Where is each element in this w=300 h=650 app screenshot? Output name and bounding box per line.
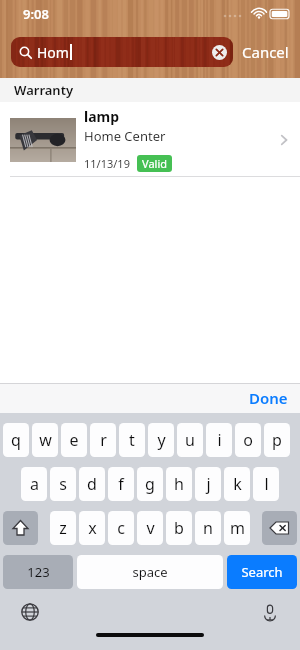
- staticText: e: [69, 429, 79, 451]
- staticText: s: [59, 473, 67, 495]
- staticText: j: [206, 473, 211, 495]
- staticText: y: [157, 429, 166, 451]
- button[interactable]: k: [224, 467, 250, 501]
- button[interactable]: l: [253, 467, 279, 501]
- staticText: lamp: [84, 107, 120, 126]
- button[interactable]: s: [50, 467, 76, 501]
- staticText: o: [243, 429, 253, 451]
- button[interactable]: d: [79, 467, 105, 501]
- button[interactable]: Search: [227, 555, 297, 589]
- button[interactable]: j: [195, 467, 221, 501]
- staticText: Search: [241, 563, 283, 581]
- staticText: w: [39, 429, 52, 451]
- button[interactable]: f: [108, 467, 134, 501]
- staticText: Hom: [37, 43, 69, 62]
- staticText: m: [230, 517, 245, 539]
- button[interactable]: Delete: [262, 511, 297, 545]
- staticText: a: [30, 473, 39, 495]
- button[interactable]: y: [148, 423, 174, 457]
- button[interactable]: o: [235, 423, 261, 457]
- staticText: n: [203, 517, 213, 539]
- staticText: t: [129, 429, 135, 451]
- staticText: p: [272, 429, 282, 451]
- staticText: d: [87, 473, 97, 495]
- staticText: Cancel: [242, 42, 289, 62]
- button[interactable]: g: [137, 467, 163, 501]
- button[interactable]: q: [3, 423, 29, 457]
- staticText: Valid: [142, 156, 167, 171]
- button[interactable]: 123: [3, 555, 73, 589]
- staticText: u: [185, 429, 195, 451]
- button[interactable]: r: [90, 423, 116, 457]
- staticText: 123: [27, 563, 50, 581]
- staticText: q: [11, 429, 21, 451]
- button[interactable]: e: [61, 423, 87, 457]
- button[interactable]: Shift: [3, 511, 38, 545]
- button[interactable]: b: [166, 511, 192, 545]
- staticText: l: [264, 473, 269, 495]
- button[interactable]: p: [264, 423, 290, 457]
- staticText: b: [174, 517, 184, 539]
- button[interactable]: space: [77, 555, 223, 589]
- button[interactable]: c: [108, 511, 134, 545]
- staticText: Warranty: [14, 81, 74, 99]
- button[interactable]: h: [166, 467, 192, 501]
- button[interactable]: lamp: [0, 102, 300, 177]
- staticText: h: [174, 473, 184, 495]
- button[interactable]: Cancel: [240, 38, 291, 66]
- button[interactable]: u: [177, 423, 203, 457]
- staticText: x: [88, 517, 97, 539]
- button[interactable]: Clear text: [212, 45, 227, 60]
- button[interactable]: i: [206, 423, 232, 457]
- button[interactable]: w: [32, 423, 58, 457]
- button[interactable]: t: [119, 423, 145, 457]
- staticText: space: [132, 563, 168, 581]
- staticText: 11/13/19: [84, 156, 130, 171]
- button[interactable]: z: [50, 511, 76, 545]
- staticText: 9:08: [23, 5, 49, 23]
- button[interactable]: a: [21, 467, 47, 501]
- button[interactable]: n: [195, 511, 221, 545]
- button[interactable]: Change keyboard: [18, 600, 42, 624]
- staticText: i: [217, 429, 222, 451]
- button[interactable]: Done: [237, 383, 300, 413]
- button[interactable]: m: [224, 511, 250, 545]
- staticText: r: [100, 429, 107, 451]
- staticText: g: [145, 473, 155, 495]
- staticText: Home Center: [84, 127, 166, 145]
- button[interactable]: x: [79, 511, 105, 545]
- button[interactable]: Hom: [11, 37, 233, 67]
- staticText: v: [146, 517, 155, 539]
- staticText: k: [233, 473, 242, 495]
- staticText: Done: [249, 388, 288, 408]
- staticText: c: [117, 517, 125, 539]
- staticText: f: [118, 473, 124, 495]
- staticText: z: [59, 517, 67, 539]
- button[interactable]: Dictate: [258, 600, 282, 624]
- button[interactable]: v: [137, 511, 163, 545]
